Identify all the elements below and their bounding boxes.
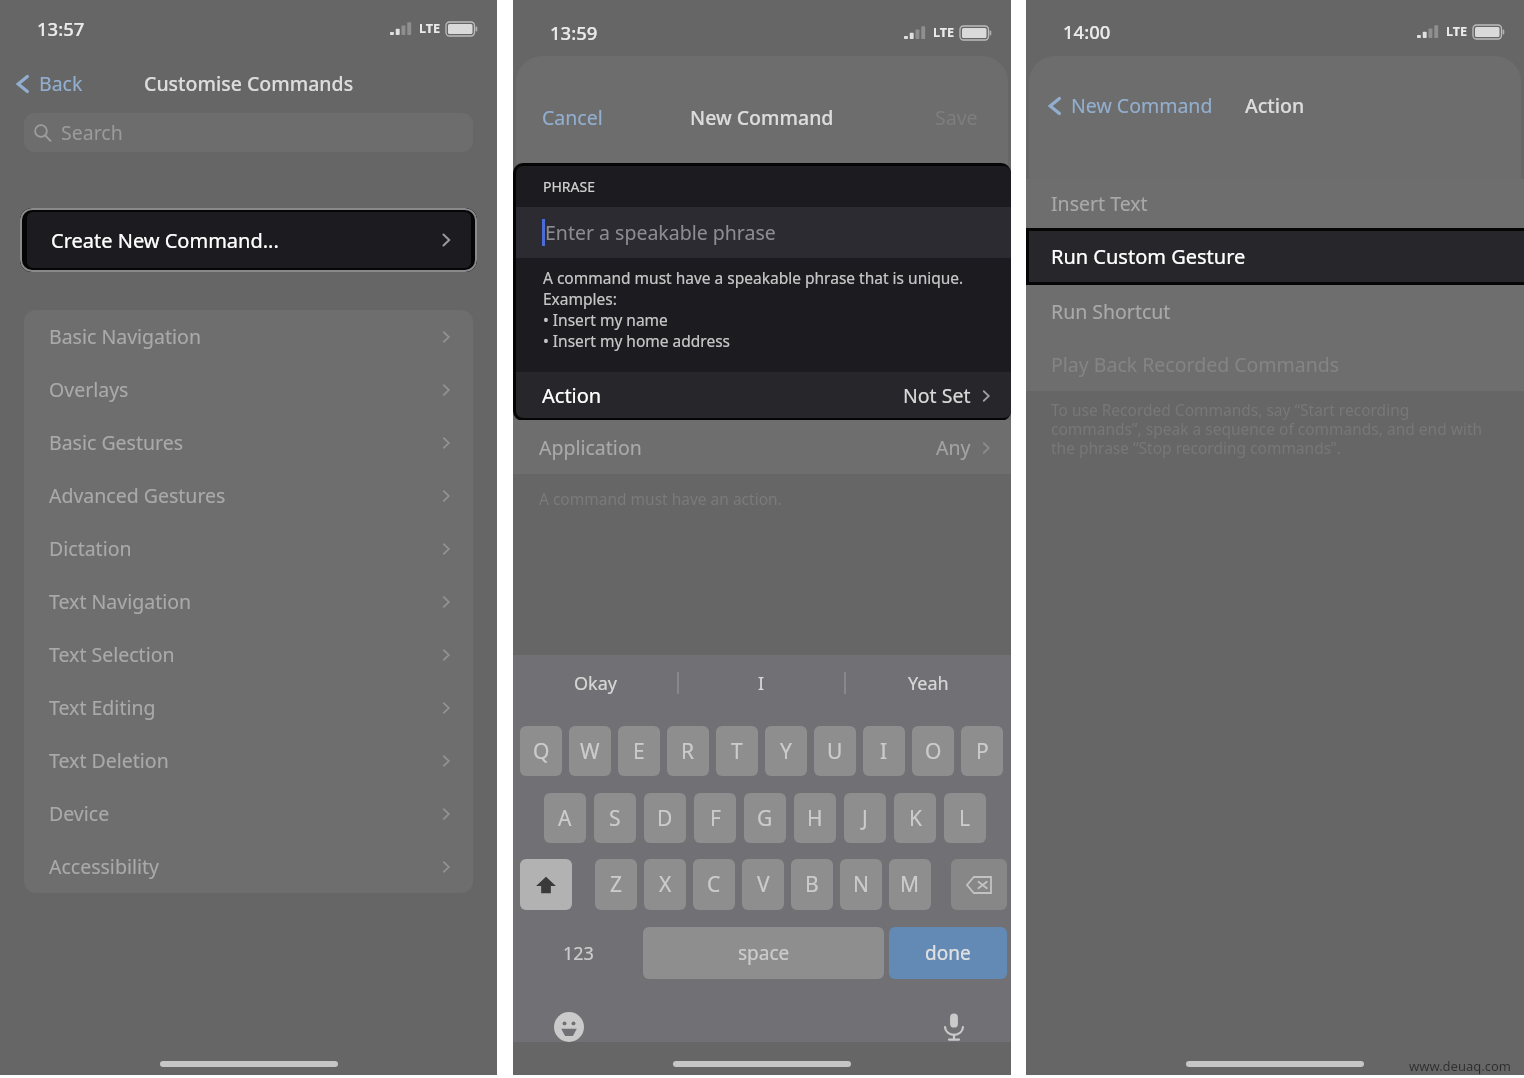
- staticText: A: [558, 804, 572, 833]
- button[interactable]: D: [644, 793, 686, 843]
- staticText: Not Set: [903, 382, 971, 409]
- staticText: Text Editing: [49, 694, 156, 721]
- button[interactable]: Text Editing: [24, 681, 473, 734]
- staticText: LTE: [933, 24, 954, 41]
- button[interactable]: W: [569, 726, 611, 776]
- other: Emoji: [554, 1012, 584, 1042]
- staticText: M: [900, 870, 920, 899]
- button[interactable]: New Command: [1044, 92, 1213, 119]
- button[interactable]: L: [944, 793, 986, 843]
- staticText: Okay: [574, 671, 617, 696]
- staticText: Text Deletion: [49, 747, 169, 774]
- button[interactable]: Back: [12, 70, 83, 97]
- button[interactable]: O: [912, 726, 954, 776]
- button[interactable]: Device: [24, 787, 473, 840]
- button[interactable]: Cancel: [542, 104, 603, 131]
- staticText: T: [731, 737, 743, 766]
- staticText: Any: [936, 434, 971, 461]
- staticText: D: [657, 804, 673, 833]
- button[interactable]: space: [643, 927, 884, 979]
- staticText: O: [925, 737, 942, 766]
- button[interactable]: done: [889, 927, 1007, 979]
- button[interactable]: Delete: [951, 859, 1007, 910]
- button[interactable]: Action: [516, 372, 1011, 418]
- button[interactable]: J: [844, 793, 886, 843]
- button[interactable]: Basic Gestures: [24, 416, 473, 469]
- button[interactable]: Insert Text: [1026, 179, 1524, 228]
- staticText: W: [580, 737, 600, 766]
- staticText: done: [925, 940, 971, 966]
- button[interactable]: F: [694, 793, 736, 843]
- button[interactable]: Shift: [520, 859, 572, 910]
- button[interactable]: E: [618, 726, 660, 776]
- staticText: Play Back Recorded Commands: [1051, 351, 1340, 378]
- staticText: Device: [49, 800, 110, 827]
- staticText: N: [853, 870, 869, 899]
- staticText: Run Custom Gesture: [1051, 243, 1246, 270]
- button[interactable]: 123: [518, 927, 638, 979]
- staticText: New Command: [690, 104, 834, 131]
- button[interactable]: X: [644, 859, 686, 910]
- button[interactable]: U: [814, 726, 856, 776]
- button[interactable]: Application: [513, 420, 1011, 474]
- button[interactable]: Search: [24, 113, 473, 152]
- staticText: Run Shortcut: [1051, 298, 1171, 325]
- staticText: F: [710, 804, 721, 833]
- button[interactable]: N: [840, 859, 882, 910]
- button[interactable]: Accessibility: [24, 840, 473, 893]
- staticText: V: [757, 870, 770, 899]
- staticText: Create New Command...: [51, 227, 279, 254]
- button[interactable]: Basic Navigation: [24, 310, 473, 363]
- button[interactable]: C: [693, 859, 735, 910]
- button[interactable]: A: [544, 793, 586, 843]
- button[interactable]: Overlays: [24, 363, 473, 416]
- staticText: Action: [542, 382, 602, 409]
- staticText: H: [807, 804, 823, 833]
- button[interactable]: Advanced Gestures: [24, 469, 473, 522]
- button[interactable]: B: [791, 859, 833, 910]
- staticText: Yeah: [908, 671, 949, 696]
- button[interactable]: M: [889, 859, 931, 910]
- button[interactable]: Q: [520, 726, 562, 776]
- staticText: Y: [780, 737, 792, 766]
- button[interactable]: G: [744, 793, 786, 843]
- staticText: Advanced Gestures: [49, 482, 226, 509]
- button[interactable]: Save: [935, 104, 978, 131]
- button[interactable]: H: [794, 793, 836, 843]
- button[interactable]: Text Selection: [24, 628, 473, 681]
- button[interactable]: K: [894, 793, 936, 843]
- button[interactable]: Text Navigation: [24, 575, 473, 628]
- button[interactable]: V: [742, 859, 784, 910]
- button[interactable]: Y: [765, 726, 807, 776]
- button[interactable]: Z: [595, 859, 637, 910]
- staticText: Z: [610, 870, 623, 899]
- staticText: Application: [539, 434, 642, 461]
- button[interactable]: P: [961, 726, 1003, 776]
- staticText: Text Navigation: [49, 588, 192, 615]
- button[interactable]: I: [863, 726, 905, 776]
- staticText: Accessibility: [49, 853, 159, 880]
- staticText: • Insert my home address: [543, 330, 730, 351]
- staticText: Search: [61, 119, 123, 146]
- button[interactable]: Run Shortcut: [1026, 285, 1524, 338]
- button[interactable]: Run Custom Gesture: [1026, 228, 1524, 285]
- staticText: To use Recorded Commands, say “Start rec…: [1051, 399, 1499, 458]
- staticText: E: [633, 737, 645, 766]
- button[interactable]: T: [716, 726, 758, 776]
- button[interactable]: R: [667, 726, 709, 776]
- other: Dictation: [940, 1013, 968, 1041]
- staticText: Basic Gestures: [49, 429, 184, 456]
- button[interactable]: Dictation: [24, 522, 473, 575]
- staticText: Q: [533, 737, 550, 766]
- staticText: Dictation: [49, 535, 132, 562]
- staticText: New Command: [1071, 92, 1213, 119]
- button[interactable]: Enter a speakable phrase: [516, 207, 1011, 258]
- staticText: I: [758, 671, 765, 696]
- staticText: X: [659, 870, 672, 899]
- button[interactable]: S: [594, 793, 636, 843]
- staticText: R: [681, 737, 695, 766]
- button[interactable]: Text Deletion: [24, 734, 473, 787]
- staticText: I: [880, 737, 888, 766]
- button[interactable]: Play Back Recorded Commands: [1026, 338, 1524, 391]
- button[interactable]: Create New Command...: [20, 208, 477, 272]
